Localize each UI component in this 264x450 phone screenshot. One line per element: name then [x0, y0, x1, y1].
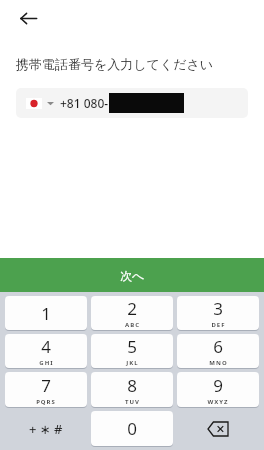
- staticText: MNO: [209, 359, 228, 367]
- button[interactable]: Backspace: [177, 411, 259, 446]
- button[interactable]: 次へ: [0, 258, 264, 292]
- staticText: 次へ: [120, 268, 145, 283]
- staticText: TUV: [125, 398, 140, 406]
- staticText: ABC: [125, 321, 140, 329]
- staticText: 1: [41, 302, 51, 325]
- button[interactable]: 6: [177, 334, 259, 368]
- button[interactable]: 5: [91, 334, 173, 368]
- staticText: 0: [127, 417, 137, 440]
- button[interactable]: 4: [5, 334, 87, 368]
- staticText: 7: [41, 374, 51, 397]
- staticText: + ∗ #: [29, 420, 63, 438]
- staticText: 4: [41, 335, 51, 358]
- staticText: 6: [213, 335, 223, 358]
- staticText: +81 080-: [60, 95, 109, 111]
- button[interactable]: 2: [91, 296, 173, 330]
- staticText: DEF: [211, 321, 226, 329]
- button[interactable]: + ∗ #: [5, 411, 87, 446]
- button[interactable]: 1: [5, 296, 87, 330]
- staticText: 8: [127, 374, 137, 397]
- button[interactable]: 8: [91, 372, 173, 407]
- staticText: JKL: [126, 359, 139, 367]
- staticText: 5: [127, 335, 137, 358]
- staticText: 携帯電話番号を入力してください: [16, 56, 214, 72]
- staticText: 9: [213, 374, 223, 397]
- staticText: GHI: [39, 359, 54, 367]
- staticText: WXYZ: [207, 398, 229, 406]
- button[interactable]: 3: [177, 296, 259, 330]
- button[interactable]: 9: [177, 372, 259, 407]
- staticText: PQRS: [36, 398, 56, 406]
- button[interactable]: 7: [5, 372, 87, 407]
- button[interactable]: 0: [91, 411, 173, 446]
- staticText: 3: [213, 297, 223, 320]
- button[interactable]: Back: [10, 0, 46, 36]
- button[interactable]: +81 080-: [16, 88, 248, 118]
- staticText: 2: [127, 297, 137, 320]
